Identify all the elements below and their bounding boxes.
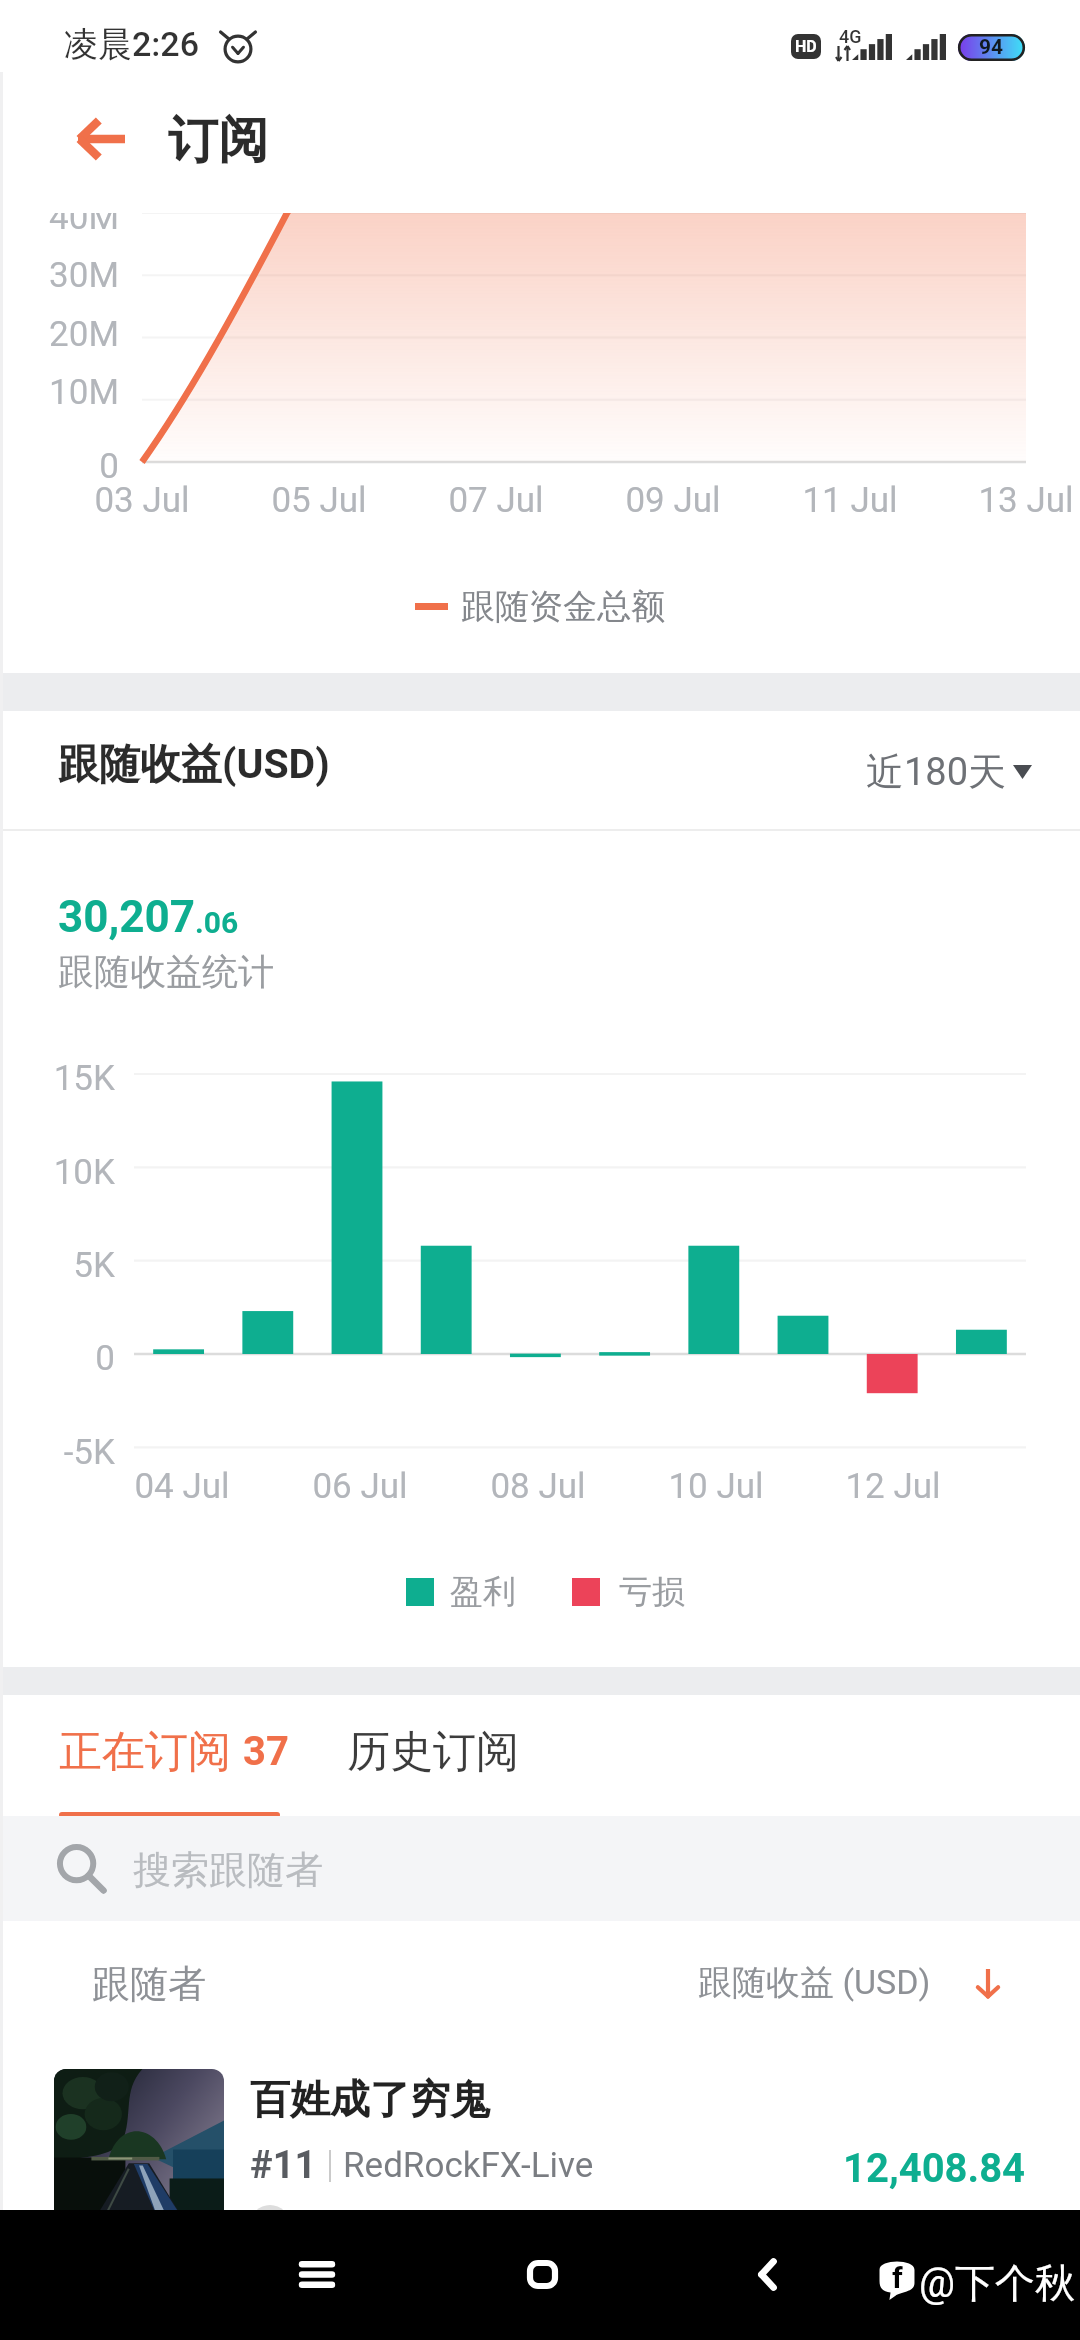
staticText: 正在订阅: [59, 1725, 231, 1779]
staticText: HD: [795, 37, 817, 56]
staticText: 跟随资金总额: [461, 585, 665, 628]
staticText: 已结束跟随: [306, 2207, 476, 2250]
staticText: 11 Jul: [750, 480, 950, 521]
staticText: 37: [243, 1728, 289, 1775]
staticText: 百姓成了穷鬼: [250, 2074, 490, 2124]
staticText: 跟随收益统计: [58, 949, 274, 994]
staticText: 0: [0, 1338, 115, 1379]
staticText: 06 Jul: [260, 1466, 460, 1507]
staticText: 15K: [0, 1058, 115, 1099]
staticText: 订阅: [168, 109, 268, 172]
staticText: 12 Jul: [793, 1466, 993, 1507]
staticText: 历史订阅: [347, 1725, 519, 1779]
button[interactable]: Home: [497, 2234, 587, 2314]
staticText: 盈利: [450, 1571, 516, 1613]
button[interactable]: 历史订阅: [347, 1691, 519, 1812]
staticText: 40M: [0, 213, 119, 238]
staticText: 4G: [839, 26, 862, 47]
staticText: 03 Jul: [42, 480, 242, 521]
staticText: #11: [250, 2143, 317, 2188]
staticText: 09 Jul: [573, 480, 773, 521]
staticText: 05 Jul: [219, 480, 419, 521]
button[interactable]: 搜索跟随者: [0, 1816, 1080, 1921]
staticText: 30M: [0, 255, 119, 296]
button[interactable]: 按跟随收益排序: [684, 1951, 1013, 2014]
staticText: 08 Jul: [438, 1466, 638, 1507]
staticText: 12,408.84: [843, 2145, 1026, 2192]
staticText: -5K: [0, 1432, 115, 1473]
staticText: 04 Jul: [82, 1466, 282, 1507]
staticText: 10M: [0, 372, 119, 413]
staticText: 07 Jul: [396, 480, 596, 521]
staticText: 近180天: [866, 748, 1007, 796]
staticText: @下个秋: [919, 2258, 1075, 2308]
staticText: 13 Jul: [926, 480, 1080, 521]
staticText: 20M: [0, 314, 119, 355]
button[interactable]: Menu: [272, 2234, 362, 2314]
button[interactable]: 选择时间范围: [854, 738, 1044, 806]
staticText: 搜索跟随者: [133, 1846, 323, 1894]
staticText: 0: [0, 446, 119, 487]
staticText: 跟随者: [92, 1960, 206, 2008]
staticText: .06: [195, 905, 239, 940]
staticText: 亏损: [619, 1571, 685, 1613]
button[interactable]: Back: [56, 94, 146, 184]
button[interactable]: Back: [722, 2234, 812, 2314]
staticText: 30,207: [58, 891, 195, 943]
staticText: 10K: [0, 1152, 115, 1193]
staticText: 10 Jul: [616, 1466, 816, 1507]
staticText: 5K: [0, 1245, 115, 1286]
staticText: 94: [979, 35, 1004, 60]
staticText: f: [892, 2260, 903, 2295]
staticText: 凌晨2:26: [64, 23, 199, 66]
staticText: 跟随收益 (USD): [698, 1961, 931, 2004]
button[interactable]: 正在订阅: [59, 1691, 289, 1812]
staticText: 跟随收益(USD): [58, 739, 330, 791]
button[interactable]: 百姓成了穷鬼: [0, 2035, 1080, 2230]
staticText: RedRockFX-Live: [343, 2145, 594, 2186]
